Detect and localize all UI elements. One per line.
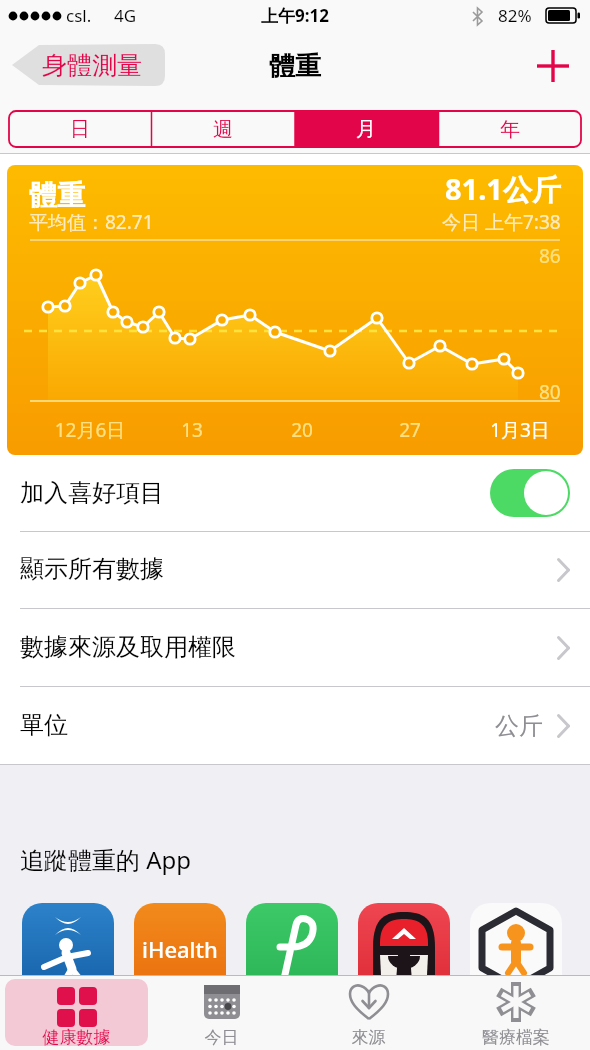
button[interactable] bbox=[246, 903, 338, 995]
button[interactable] bbox=[490, 469, 570, 517]
staticText: 27 bbox=[370, 417, 450, 443]
button[interactable]: 顯示所有數據 bbox=[0, 532, 590, 608]
staticText: 單位 bbox=[20, 710, 68, 740]
staticText: 今日 上午7:38 bbox=[442, 209, 561, 235]
button[interactable]: 醫療檔案 bbox=[442, 975, 590, 1050]
staticText: 4G bbox=[114, 4, 137, 27]
button[interactable]: 今日 bbox=[148, 975, 295, 1050]
staticText: 身體測量 bbox=[42, 50, 142, 81]
staticText: 1月3日 bbox=[480, 417, 560, 443]
staticText: 13 bbox=[152, 417, 232, 443]
staticText: 上午9:12 bbox=[0, 4, 590, 27]
button[interactable]: 數據來源及取用權限 bbox=[0, 609, 590, 686]
staticText: 追蹤體重的 App bbox=[20, 843, 192, 876]
button[interactable]: 健康數據 bbox=[5, 979, 148, 1046]
staticText: 體重 bbox=[0, 50, 590, 83]
staticText: 81.1公斤 bbox=[445, 169, 561, 209]
button[interactable]: 來源 bbox=[295, 975, 442, 1050]
staticText: 來源 bbox=[295, 1027, 442, 1048]
button[interactable] bbox=[358, 903, 450, 995]
staticText: 年 bbox=[500, 117, 520, 142]
button[interactable]: 單位 bbox=[0, 687, 590, 764]
staticText: 公斤 bbox=[495, 711, 543, 741]
staticText: 醫療檔案 bbox=[442, 1027, 590, 1048]
button[interactable]: 體重 bbox=[7, 165, 583, 455]
staticText: 週 bbox=[213, 117, 233, 142]
button[interactable] bbox=[470, 903, 562, 995]
staticText: 加入喜好項目 bbox=[20, 478, 164, 508]
staticText: 月 bbox=[356, 117, 376, 142]
button[interactable] bbox=[22, 903, 114, 995]
button[interactable]: iHealth bbox=[134, 903, 226, 995]
button[interactable] bbox=[530, 46, 576, 86]
staticText: 顯示所有數據 bbox=[20, 554, 164, 584]
button[interactable]: 月 bbox=[294, 110, 438, 148]
staticText: 平均值：82.71 bbox=[29, 209, 154, 235]
staticText: 12月6日 bbox=[50, 417, 130, 443]
staticText: 20 bbox=[262, 417, 342, 443]
staticText: 數據來源及取用權限 bbox=[20, 632, 236, 662]
button[interactable]: 年 bbox=[438, 110, 582, 148]
staticText: 82% bbox=[498, 4, 532, 27]
staticText: 86 bbox=[539, 243, 561, 269]
button[interactable]: 加入喜好項目 bbox=[0, 455, 590, 531]
staticText: 80 bbox=[539, 379, 561, 405]
staticText: 日 bbox=[70, 117, 90, 142]
button[interactable]: 日 bbox=[8, 110, 151, 148]
staticText: 今日 bbox=[148, 1027, 295, 1048]
button[interactable]: 身體測量 bbox=[12, 44, 166, 86]
staticText: 體重 bbox=[29, 178, 85, 213]
staticText: 健康數據 bbox=[5, 1027, 148, 1046]
staticText: csl. bbox=[66, 4, 92, 27]
button[interactable]: 週 bbox=[151, 110, 294, 148]
staticText: iHealth bbox=[142, 934, 218, 964]
